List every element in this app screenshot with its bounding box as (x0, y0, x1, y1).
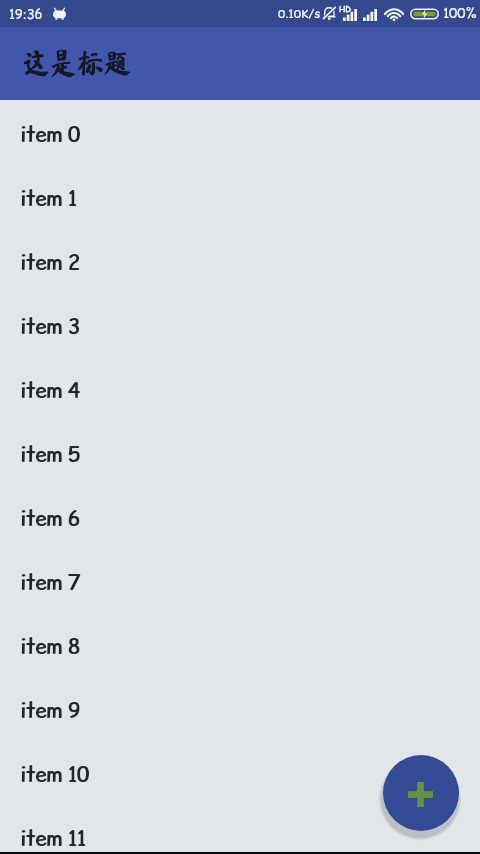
button[interactable]: item 4 (0, 359, 480, 423)
button[interactable]: item 8 (0, 615, 480, 679)
button[interactable]: item 11 (0, 807, 480, 854)
staticText: item 1 (20, 185, 77, 213)
button[interactable]: Add (383, 755, 459, 831)
button[interactable]: item 2 (0, 231, 480, 295)
staticText: item 11 (21, 825, 87, 853)
staticText: 这是标题 (22, 48, 130, 78)
staticText: item 2 (20, 249, 80, 277)
staticText: item 1 (21, 185, 78, 213)
button[interactable]: item 5 (0, 423, 480, 487)
staticText: item 4 (21, 377, 81, 405)
staticText: 19:36 (9, 5, 43, 23)
button[interactable]: item 7 (0, 551, 480, 615)
button[interactable]: item 0 (0, 103, 480, 167)
staticText: HD (339, 4, 351, 15)
staticText: item 11 (20, 825, 86, 853)
staticText: item 4 (20, 377, 80, 405)
staticText: item 3 (20, 313, 80, 341)
staticText: 这是标题 (23, 48, 131, 78)
staticText: item 2 (21, 249, 81, 277)
staticText: item 5 (20, 441, 80, 469)
staticText: item 8 (20, 633, 80, 661)
staticText: item 5 (21, 441, 81, 469)
staticText: 100% (443, 4, 477, 23)
button[interactable]: item 6 (0, 487, 480, 551)
button[interactable]: item 10 (0, 743, 480, 807)
staticText: item 0 (21, 121, 81, 149)
staticText: item 3 (21, 313, 81, 341)
staticText: item 9 (20, 697, 80, 725)
staticText: item 8 (21, 633, 81, 661)
staticText: item 9 (21, 697, 81, 725)
staticText: item 10 (20, 761, 89, 789)
staticText: item 0 (20, 121, 80, 149)
staticText: 0.10K/s (278, 5, 321, 22)
staticText: item 6 (21, 505, 81, 533)
button[interactable]: item 3 (0, 295, 480, 359)
button[interactable]: item 9 (0, 679, 480, 743)
staticText: item 6 (20, 505, 80, 533)
button[interactable]: item 1 (0, 167, 480, 231)
staticText: item 7 (21, 569, 81, 597)
staticText: 这是标题 (23, 48, 131, 78)
staticText: item 10 (21, 761, 90, 789)
staticText: item 7 (20, 569, 80, 597)
